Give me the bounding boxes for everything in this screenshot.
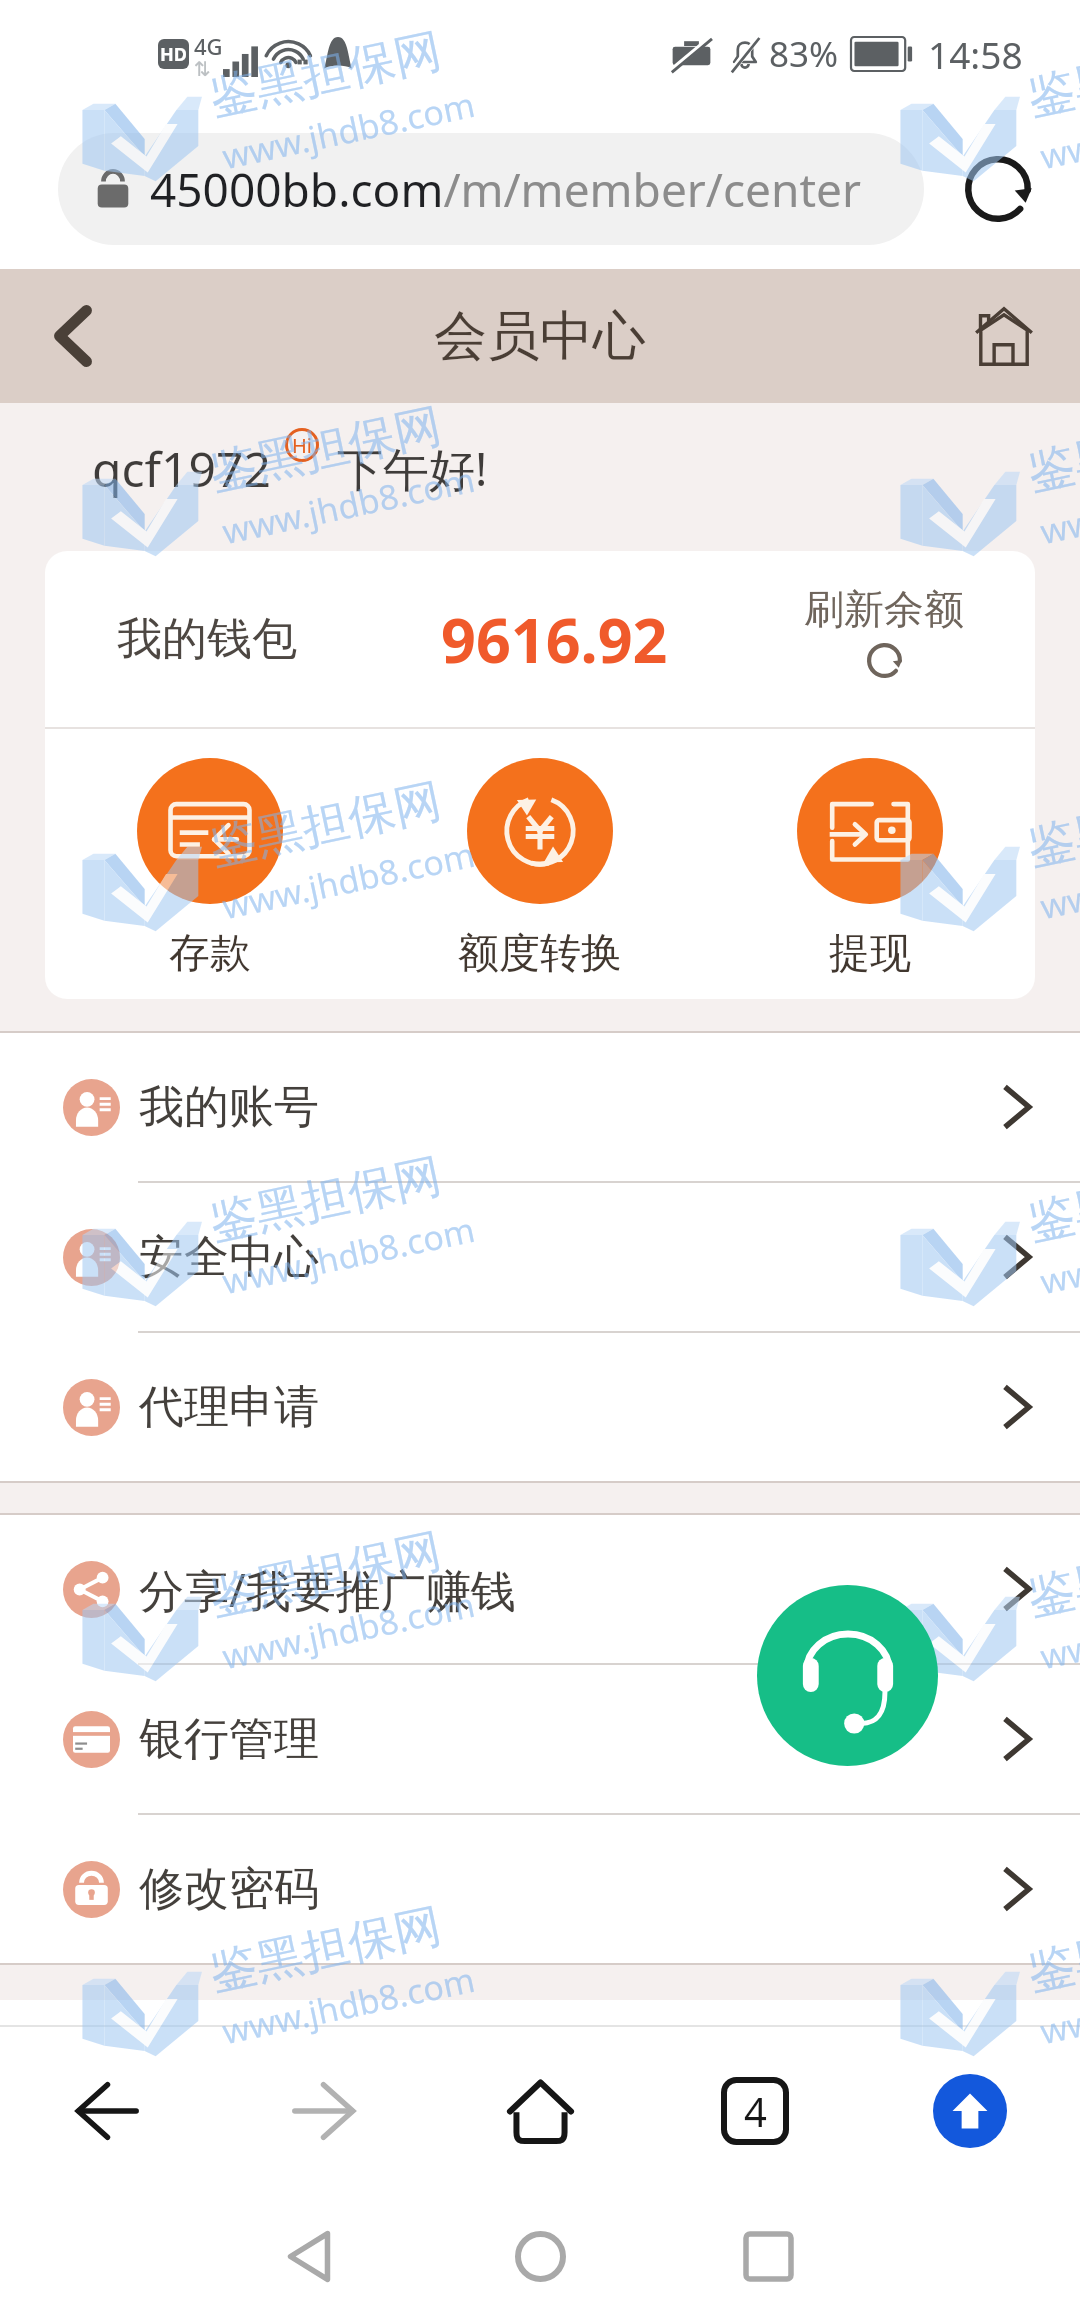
staticText: 安全中心: [139, 1229, 319, 1286]
staticText: 鉴黑担保网: [204, 771, 446, 878]
button[interactable]: 存款: [45, 758, 375, 980]
staticText: 修改密码: [139, 1861, 319, 1918]
staticText: 鉴黑担保网: [1022, 1896, 1080, 2003]
staticText: www.jhdb8.com: [1036, 81, 1080, 179]
button[interactable]: Home: [954, 286, 1054, 386]
staticText: 45000bb.com/m/member/center: [150, 158, 861, 221]
staticText: 鉴黑担保网: [204, 1146, 446, 1253]
staticText: www.jhdb8.com: [218, 456, 479, 554]
button[interactable]: 分享/我要推广赚钱: [0, 1515, 1080, 1663]
staticText: www.jhdb8.com: [1036, 1206, 1080, 1304]
staticText: HD: [160, 42, 187, 67]
button[interactable]: 额度转换: [375, 758, 705, 980]
button[interactable]: Home: [492, 2063, 588, 2159]
button[interactable]: Back: [269, 2216, 349, 2296]
staticText: 鉴黑担保网: [1022, 771, 1080, 878]
staticText: www.jhdb8.com: [218, 1206, 479, 1304]
button[interactable]: Recents: [728, 2216, 808, 2296]
button[interactable]: 45000bb.com/m/member/center: [58, 133, 924, 245]
button[interactable]: Back: [59, 2063, 155, 2159]
staticText: qcf1972: [92, 436, 271, 501]
staticText: 代理申请: [139, 1379, 319, 1436]
button[interactable]: 我的账号: [0, 1033, 1080, 1181]
staticText: 鉴黑担保网: [204, 21, 446, 128]
staticText: 银行管理: [139, 1711, 319, 1768]
staticText: 鉴黑担保网: [1022, 1146, 1080, 1253]
staticText: 分享/我要推广赚钱: [139, 1559, 516, 1620]
button[interactable]: 代理申请: [0, 1333, 1080, 1481]
staticText: www.jhdb8.com: [218, 831, 479, 929]
button[interactable]: 修改密码: [0, 1815, 1080, 1963]
button[interactable]: Scroll to top: [922, 2063, 1018, 2159]
staticText: 鉴黑担保网: [1022, 396, 1080, 503]
staticText: 鉴黑担保网: [204, 396, 446, 503]
staticText: www.jhdb8.com: [1036, 1956, 1080, 2054]
staticText: 83%: [769, 30, 839, 78]
staticText: 会员中心: [434, 303, 646, 370]
button[interactable]: Customer service: [757, 1585, 938, 1766]
button[interactable]: 提现: [705, 758, 1035, 980]
staticText: 鉴黑担保网: [1022, 1521, 1080, 1628]
staticText: 4G: [194, 31, 223, 61]
button[interactable]: Reload: [948, 139, 1048, 239]
staticText: www.jhdb8.com: [1036, 831, 1080, 929]
staticText: 额度转换: [458, 928, 622, 980]
button[interactable]: Home: [500, 2216, 580, 2296]
button[interactable]: Tabs: [707, 2063, 803, 2159]
staticText: 鉴黑担保网: [1022, 21, 1080, 128]
staticText: Hi: [292, 432, 312, 459]
staticText: www.jhdb8.com: [218, 1956, 479, 2054]
button[interactable]: 银行管理: [0, 1665, 1080, 1813]
staticText: 4: [744, 2084, 767, 2138]
staticText: 下午好!: [337, 437, 488, 500]
staticText: 鉴黑担保网: [204, 1896, 446, 2003]
staticText: www.jhdb8.com: [1036, 1581, 1080, 1679]
staticText: 14:58: [928, 29, 1023, 79]
staticText: www.jhdb8.com: [1036, 456, 1080, 554]
staticText: 提现: [829, 928, 911, 980]
staticText: 鉴黑担保网: [204, 1521, 446, 1628]
staticText: 9616.92: [441, 598, 668, 681]
staticText: ⇅: [194, 57, 211, 80]
staticText: 我的钱包: [117, 611, 297, 668]
staticText: 存款: [169, 928, 251, 980]
button[interactable]: 安全中心: [0, 1183, 1080, 1331]
button[interactable]: Forward: [275, 2063, 371, 2159]
button[interactable]: 刷新余额: [804, 584, 964, 679]
staticText: 刷新余额: [804, 584, 964, 634]
staticText: 我的账号: [139, 1079, 319, 1136]
staticText: www.jhdb8.com: [218, 81, 479, 179]
button[interactable]: Back: [26, 289, 120, 383]
staticText: www.jhdb8.com: [218, 1581, 479, 1679]
